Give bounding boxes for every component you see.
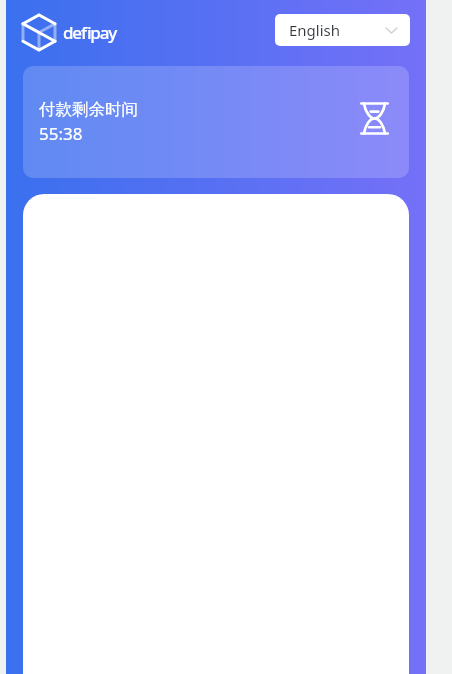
button[interactable]: 付款剩余时间 (23, 66, 409, 178)
other: defipay home (23, 15, 55, 50)
staticText: English (289, 20, 341, 40)
button[interactable]: defipay home (23, 15, 116, 50)
other: Payment countdown (360, 102, 389, 135)
button[interactable]: English (275, 14, 410, 46)
staticText: 付款剩余时间 (39, 99, 138, 120)
staticText: defipay (63, 21, 116, 44)
staticText: 55:38 (39, 122, 83, 145)
